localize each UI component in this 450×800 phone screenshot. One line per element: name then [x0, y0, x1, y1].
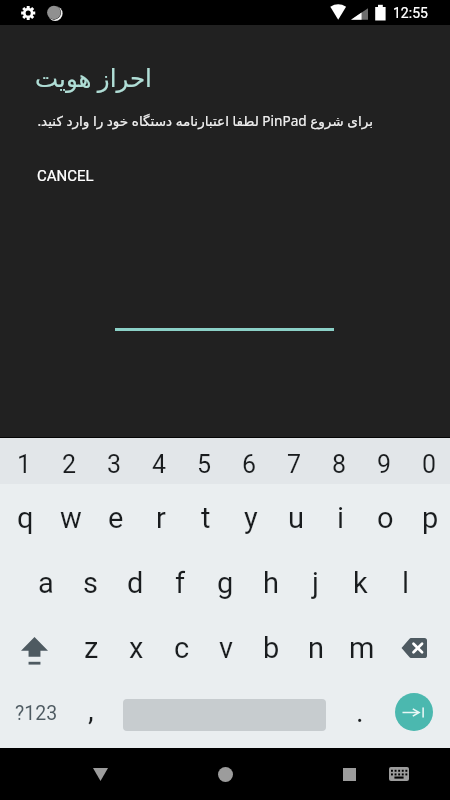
- staticText: 1: [17, 450, 32, 479]
- button[interactable]: h: [247, 550, 292, 616]
- button[interactable]: Backspace: [382, 616, 450, 682]
- button[interactable]: z: [67, 616, 112, 682]
- staticText: برای شروع PinPad لطفا اعتبارنامه دستگاه …: [34, 111, 373, 130]
- staticText: k: [353, 566, 368, 600]
- staticText: f: [175, 566, 186, 600]
- button[interactable]: 7: [270, 438, 315, 484]
- staticText: g: [217, 566, 234, 600]
- staticText: z: [84, 631, 99, 665]
- button[interactable]: 1: [0, 438, 45, 484]
- staticText: w: [60, 501, 82, 535]
- staticText: m: [349, 631, 375, 665]
- staticText: x: [129, 631, 144, 665]
- staticText: o: [377, 501, 394, 535]
- staticText: احراز هویت: [35, 61, 152, 94]
- button[interactable]: ,: [67, 682, 112, 748]
- button[interactable]: Shift: [0, 616, 67, 682]
- button[interactable]: l: [382, 550, 427, 616]
- button[interactable]: 2: [45, 438, 90, 484]
- button[interactable]: c: [157, 616, 202, 682]
- staticText: ,: [88, 693, 94, 727]
- button[interactable]: 3: [90, 438, 135, 484]
- staticText: 3: [107, 450, 122, 479]
- button[interactable]: 4: [135, 438, 180, 484]
- staticText: .: [356, 695, 364, 729]
- button[interactable]: Recents: [323, 748, 375, 800]
- staticText: 2: [62, 450, 77, 479]
- button[interactable]: r: [135, 484, 180, 550]
- staticText: c: [174, 631, 190, 665]
- button[interactable]: b: [247, 616, 292, 682]
- button[interactable]: 9: [360, 438, 405, 484]
- button[interactable]: d: [112, 550, 157, 616]
- button[interactable]: e: [90, 484, 135, 550]
- staticText: 7: [287, 450, 302, 479]
- staticText: u: [288, 501, 304, 535]
- button[interactable]: a: [22, 550, 67, 616]
- button[interactable]: f: [157, 550, 202, 616]
- staticText: a: [38, 566, 54, 600]
- staticText: s: [83, 566, 98, 600]
- button[interactable]: s: [67, 550, 112, 616]
- button[interactable]: .: [337, 682, 382, 748]
- staticText: h: [263, 566, 279, 600]
- button[interactable]: u: [270, 484, 315, 550]
- staticText: CANCEL: [37, 167, 94, 185]
- button[interactable]: Switch keyboard: [373, 748, 425, 800]
- button[interactable]: y: [225, 484, 270, 550]
- button[interactable]: t: [180, 484, 225, 550]
- staticText: r: [156, 501, 166, 535]
- button[interactable]: o: [360, 484, 405, 550]
- button[interactable]: x: [112, 616, 157, 682]
- button[interactable]: q: [0, 484, 45, 550]
- button[interactable]: p: [405, 484, 450, 550]
- staticText: j: [312, 566, 319, 600]
- staticText: 4: [152, 450, 167, 479]
- staticText: ?123: [15, 702, 58, 725]
- button[interactable]: Back: [74, 748, 126, 800]
- button[interactable]: i: [315, 484, 360, 550]
- staticText: 5: [197, 450, 212, 479]
- staticText: p: [422, 501, 439, 535]
- staticText: 8: [332, 450, 347, 479]
- button[interactable]: CANCEL: [27, 159, 104, 193]
- staticText: b: [263, 631, 280, 665]
- button[interactable]: Home: [199, 748, 251, 800]
- button[interactable]: v: [202, 616, 247, 682]
- staticText: v: [219, 631, 234, 665]
- button[interactable]: m: [337, 616, 382, 682]
- button[interactable]: n: [292, 616, 337, 682]
- button[interactable]: g: [202, 550, 247, 616]
- button[interactable]: 5: [180, 438, 225, 484]
- staticText: d: [127, 566, 144, 600]
- staticText: t: [201, 501, 211, 535]
- staticText: i: [337, 501, 345, 535]
- staticText: l: [402, 566, 410, 600]
- staticText: e: [108, 501, 124, 535]
- button[interactable]: w: [45, 484, 90, 550]
- staticText: n: [308, 631, 325, 665]
- button[interactable]: ?123: [0, 682, 67, 748]
- button[interactable]: 8: [315, 438, 360, 484]
- staticText: q: [17, 501, 34, 535]
- button[interactable]: 6: [225, 438, 270, 484]
- staticText: 0: [422, 450, 437, 479]
- staticText: 12:55: [393, 5, 428, 21]
- staticText: 6: [242, 450, 257, 479]
- button[interactable]: Enter: [395, 693, 433, 731]
- button[interactable]: 0: [405, 438, 450, 484]
- staticText: y: [244, 501, 258, 535]
- button[interactable]: j: [292, 550, 337, 616]
- button[interactable]: k: [337, 550, 382, 616]
- staticText: 9: [377, 450, 392, 479]
